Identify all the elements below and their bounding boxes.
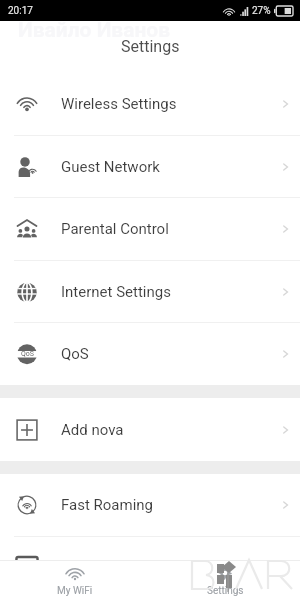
staticText: My WiFi [57,585,93,597]
button[interactable]: Wireless Settings [0,72,300,135]
staticText: Settings [207,585,244,597]
staticText: Wireless Settings [61,95,177,113]
button[interactable]: QoS [0,322,300,385]
button[interactable]: Guest Network [0,135,300,198]
staticText: Fast Roaming [61,496,154,514]
staticText: 27% [252,5,271,17]
staticText: Parental Control [61,220,169,238]
staticText: QoS [21,350,34,358]
staticText: Add nova [61,421,124,439]
staticText: 20:17 [8,5,33,17]
button[interactable]: Fast Roaming [0,473,300,536]
staticText: Internet Settings [61,283,171,301]
button[interactable]: Device Manage [0,536,300,599]
button[interactable]: My WiFi [0,561,150,600]
staticText: Device Manage [61,559,164,577]
staticText: Ивайло Иванов [18,18,171,43]
other: Settings [214,566,236,580]
button[interactable]: Add nova [0,398,300,461]
other: My WiFi [64,566,86,580]
button[interactable]: Settings [150,561,300,600]
staticText: Guest Network [61,158,160,176]
button[interactable]: Internet Settings [0,260,300,323]
staticText: QoS [61,345,89,363]
button[interactable]: Parental Control [0,197,300,260]
staticText: Settings [121,37,180,56]
